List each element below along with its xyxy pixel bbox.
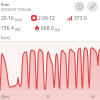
staticText: [bpm] <box>1 36 10 40</box>
button[interactable]: Edit <box>87 1 98 12</box>
staticText: 0[km] <box>1 95 10 99</box>
button[interactable]: [bpm] <box>0 35 100 100</box>
staticText: [km] <box>15 18 22 22</box>
staticText: 156.4 <box>1 25 14 32</box>
staticText: 668.0 <box>41 25 54 32</box>
staticText: 373.0 <box>74 15 87 22</box>
staticText: 20 <box>46 95 50 99</box>
staticText: [W] <box>15 28 21 32</box>
button[interactable]: Stats <box>74 1 85 12</box>
staticText: 29.16 <box>1 15 14 22</box>
staticText: 2:09:12 <box>38 15 55 22</box>
staticText: [kJ] <box>55 28 60 32</box>
staticText: 27/06/23 17:03:46 <box>1 7 32 12</box>
staticText: Ride <box>1 2 10 7</box>
staticText: 40 <box>91 95 95 99</box>
